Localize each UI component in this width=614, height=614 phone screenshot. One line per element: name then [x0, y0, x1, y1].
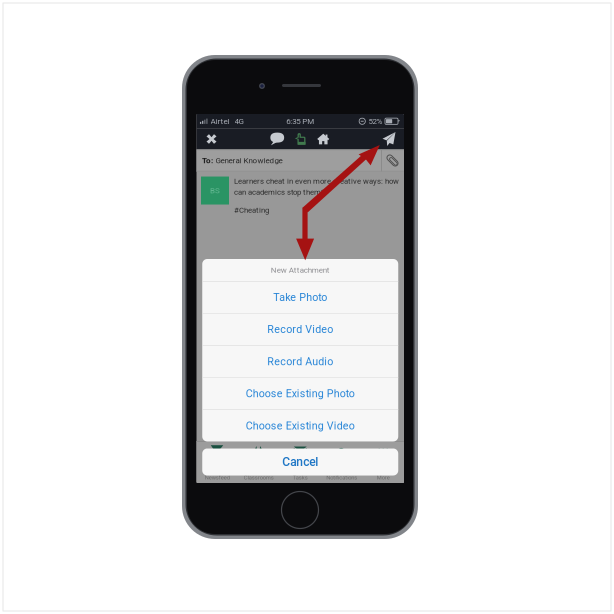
- button[interactable]: Comments: [266, 128, 288, 149]
- staticText: Choose Existing Photo: [246, 387, 355, 400]
- staticText: More: [377, 474, 390, 481]
- staticText: Airtel: [210, 117, 229, 126]
- staticText: Tasks: [293, 474, 308, 481]
- staticText: Choose Existing Video: [246, 419, 355, 432]
- button[interactable]: Attach: [381, 149, 404, 171]
- staticText: can academics stop them?: [234, 188, 325, 197]
- staticText: General Knowledge: [215, 156, 282, 165]
- staticText: Record Video: [267, 323, 333, 336]
- button[interactable]: Like: [289, 128, 311, 149]
- staticText: Cancel: [282, 455, 318, 469]
- staticText: 4G: [234, 117, 243, 126]
- staticText: New Attachment: [271, 265, 330, 275]
- button[interactable]: Tasks: [279, 441, 321, 483]
- button[interactable]: Take Photo: [202, 282, 398, 313]
- staticText: #Cheating: [234, 206, 269, 215]
- staticText: 52%: [368, 117, 382, 126]
- button[interactable]: Classrooms: [238, 441, 279, 483]
- staticText: Take Photo: [273, 291, 327, 304]
- staticText: To:: [202, 156, 213, 165]
- staticText: Learners cheat in even more creative way…: [234, 176, 399, 186]
- button[interactable]: Choose Existing Video: [202, 410, 398, 441]
- button[interactable]: Notifications: [321, 441, 362, 483]
- button[interactable]: Send: [377, 128, 401, 149]
- staticText: Classrooms: [244, 474, 274, 481]
- staticText: BS: [210, 186, 220, 195]
- button[interactable]: Cancel: [202, 448, 398, 475]
- staticText: Notifications: [326, 474, 357, 481]
- button[interactable]: Choose Existing Photo: [202, 378, 398, 409]
- button[interactable]: Home: [312, 128, 334, 149]
- button[interactable]: Record Audio: [202, 346, 398, 377]
- staticText: Newsfeed: [205, 474, 230, 481]
- button[interactable]: Close: [199, 128, 223, 149]
- button[interactable]: Record Video: [202, 314, 398, 345]
- button[interactable]: More: [362, 441, 404, 483]
- staticText: 6:35 PM: [286, 117, 314, 126]
- staticText: Record Audio: [267, 355, 333, 368]
- button[interactable]: Newsfeed: [196, 441, 238, 483]
